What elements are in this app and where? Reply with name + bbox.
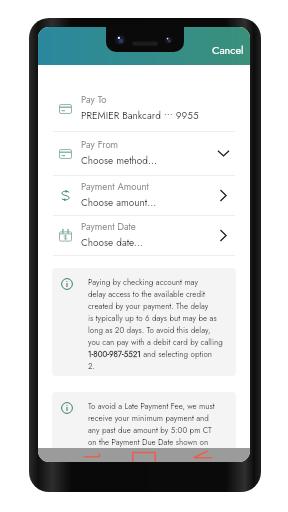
button[interactable]: Pay From <box>38 132 250 175</box>
button[interactable]: Payment Date <box>38 216 250 255</box>
staticText: Payment Amount <box>81 180 149 194</box>
staticText: Pay From <box>81 138 119 152</box>
staticText: Pay To <box>81 93 107 107</box>
staticText: Cancel <box>212 42 244 58</box>
staticText: Paying by checking account may delay acc… <box>88 276 223 372</box>
button[interactable]: Pay To <box>38 86 250 131</box>
staticText: Payment Date <box>81 220 136 234</box>
staticText: Choose date... <box>81 235 143 249</box>
staticText: Choose method... <box>81 153 157 167</box>
button[interactable]: To avoid a Late Payment Fee, we must rec… <box>52 392 236 462</box>
button[interactable]: Paying by checking account may delay acc… <box>52 268 236 376</box>
staticText: Choose amount... <box>81 195 157 209</box>
button[interactable]: Cancel <box>200 32 250 60</box>
staticText: To avoid a Late Payment Fee, we must rec… <box>88 400 215 458</box>
button[interactable]: Payment Amount <box>38 176 250 215</box>
staticText: PREMIER Bankcard ••• 9955 <box>81 108 199 122</box>
